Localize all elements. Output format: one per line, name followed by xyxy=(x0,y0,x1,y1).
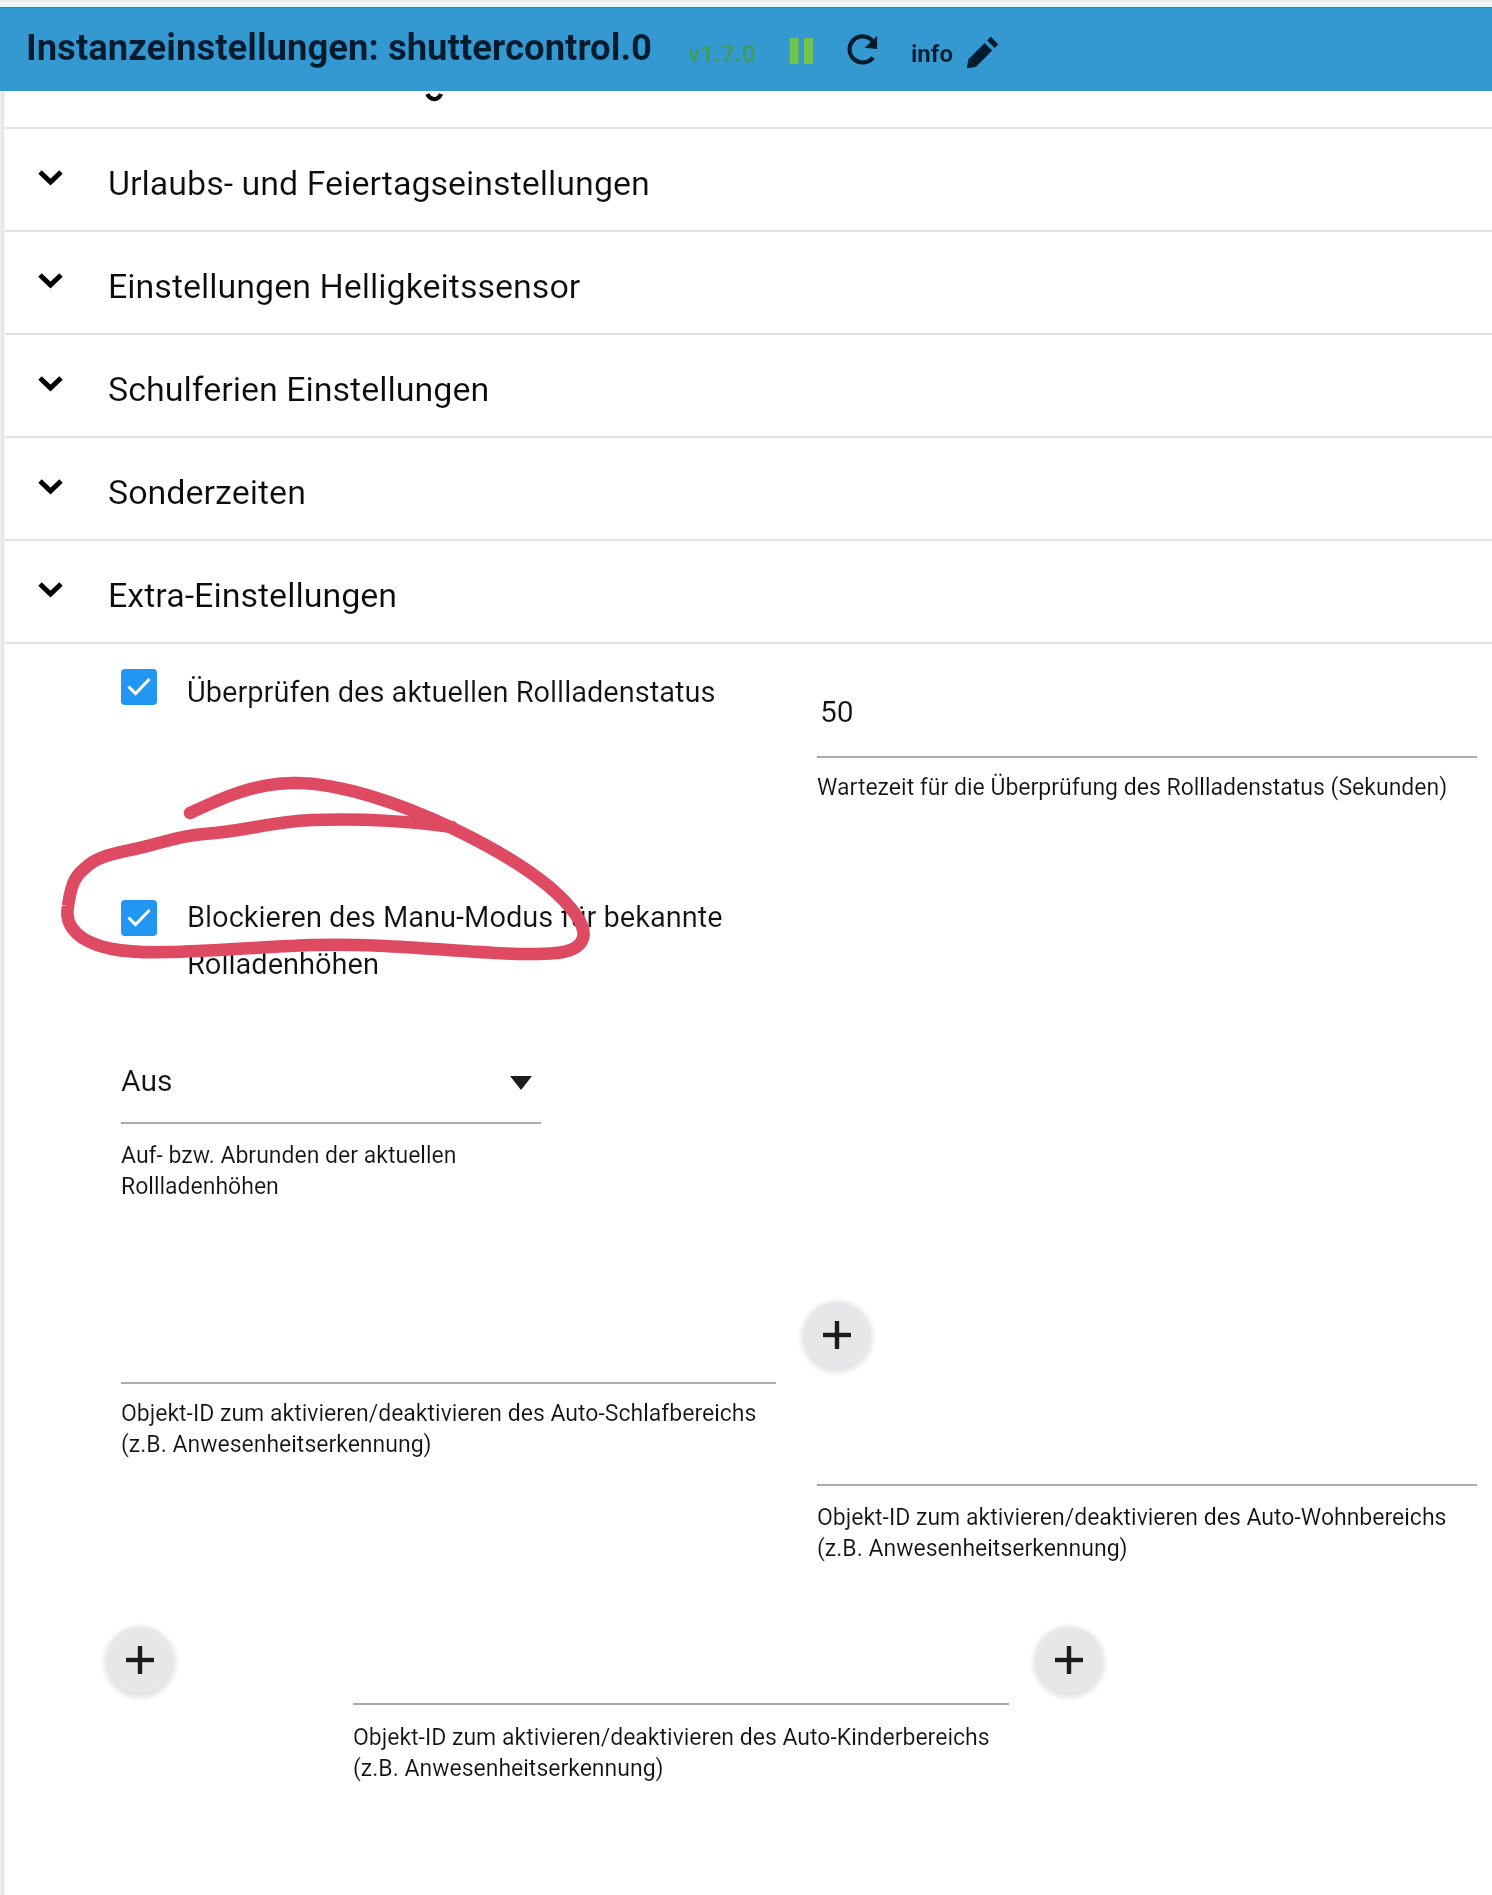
button[interactable]: Add xyxy=(804,1302,870,1368)
staticText: Überprüfen des aktuellen Rollladenstatus xyxy=(187,675,716,709)
button[interactable]: Aus xyxy=(121,1055,541,1125)
staticText: Sonderzeiten xyxy=(108,472,306,512)
button[interactable]: Checkbox xyxy=(121,900,158,937)
staticText: Objekt-ID zum aktivieren/deaktivieren de… xyxy=(121,1400,757,1457)
staticText: Extra-Einstellungen xyxy=(108,575,398,615)
staticText: Objekt-ID zum aktivieren/deaktivieren de… xyxy=(817,1504,1447,1561)
button[interactable]: Einstellungen Helligkeitssensor xyxy=(0,230,1492,333)
button[interactable]: Add xyxy=(107,1627,173,1693)
staticText: Aus xyxy=(121,1063,173,1098)
button[interactable]: Urlaubs- und Feiertagseinstellungen xyxy=(0,127,1492,230)
staticText: Objekt-ID zum aktivieren/deaktivieren de… xyxy=(353,1724,990,1781)
staticText: Einstellungen Helligkeitssensor xyxy=(108,266,581,306)
staticText: Auf- bzw. Abrunden der aktuellen Rolllad… xyxy=(121,1142,457,1199)
staticText: Instanzeinstellungen: shuttercontrol.0 xyxy=(26,26,652,69)
button[interactable]: Edit xyxy=(965,35,999,69)
button[interactable]: Add xyxy=(1036,1627,1102,1693)
button[interactable]: Extra-Einstellungen xyxy=(0,539,1492,642)
button[interactable]: Checkbox xyxy=(121,669,158,706)
staticText: Blockieren des Manu-Modus für bekannte R… xyxy=(187,900,723,981)
button[interactable]: Sonderzeiten xyxy=(0,436,1492,539)
button[interactable]: Schulferien Einstellungen xyxy=(0,333,1492,436)
button[interactable]: info xyxy=(911,40,953,68)
staticText: Urlaubs- und Feiertagseinstellungen xyxy=(108,163,650,203)
button[interactable]: 50 xyxy=(817,690,1477,760)
staticText: Schulferien Einstellungen xyxy=(108,369,490,409)
button[interactable]: Refresh xyxy=(845,29,883,69)
staticText: v1.7.0 xyxy=(688,40,756,68)
staticText: 50 xyxy=(820,694,854,729)
staticText: Wartezeit für die Überprüfung des Rollla… xyxy=(817,774,1448,801)
button[interactable]: Pause xyxy=(782,29,822,69)
